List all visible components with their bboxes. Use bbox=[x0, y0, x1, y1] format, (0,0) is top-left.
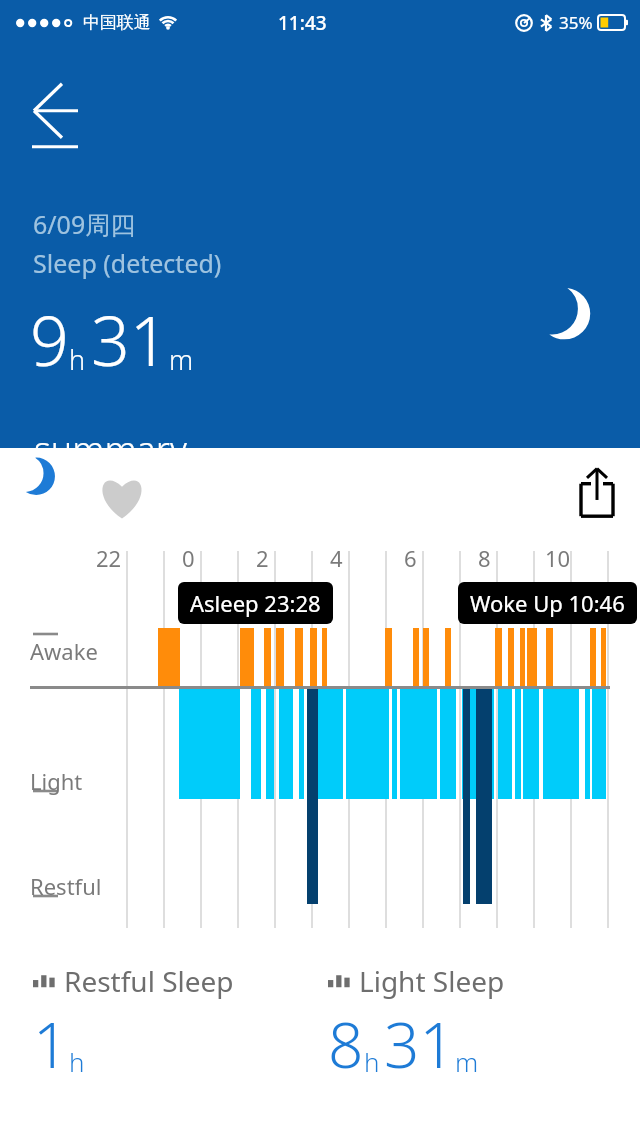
button[interactable]: Heart rate bbox=[95, 470, 149, 524]
staticText: h bbox=[69, 341, 86, 378]
staticText: 31 bbox=[91, 293, 169, 386]
staticText: 31 bbox=[384, 1002, 455, 1086]
staticText: 8 bbox=[478, 543, 491, 573]
button[interactable]: summary bbox=[30, 423, 191, 476]
button[interactable]: Share bbox=[572, 464, 622, 522]
button[interactable]: Back bbox=[22, 85, 88, 141]
staticText: 中国联通 bbox=[83, 12, 151, 33]
staticText: Restful bbox=[30, 871, 102, 901]
staticText: 6 bbox=[404, 543, 417, 573]
staticText: 6/09周四 bbox=[33, 207, 136, 241]
staticText: Woke Up 10:46 bbox=[470, 588, 625, 618]
staticText: 0 bbox=[182, 543, 195, 573]
staticText: Awake bbox=[30, 636, 98, 666]
staticText: h bbox=[364, 1044, 380, 1079]
staticText: 2 bbox=[256, 543, 269, 573]
button[interactable]: Asleep 23:28 bbox=[190, 588, 321, 618]
staticText: 8 bbox=[328, 1002, 364, 1086]
staticText: 35% bbox=[559, 11, 593, 34]
staticText: 11:43 bbox=[278, 10, 327, 36]
staticText: Light Sleep bbox=[359, 962, 505, 1000]
staticText: Sleep (detected) bbox=[33, 246, 222, 280]
staticText: m bbox=[455, 1044, 479, 1079]
staticText: h bbox=[69, 1044, 85, 1079]
staticText: 1 bbox=[33, 1002, 69, 1086]
staticText: 22 bbox=[96, 543, 122, 573]
staticText: 10 bbox=[545, 543, 571, 573]
staticText: 4 bbox=[330, 543, 343, 573]
staticText: m bbox=[169, 341, 194, 378]
staticText: Restful Sleep bbox=[64, 962, 234, 1000]
staticText: 9 bbox=[30, 293, 69, 386]
staticText: Asleep 23:28 bbox=[190, 588, 321, 618]
button[interactable]: Sleep bbox=[30, 468, 82, 520]
staticText: Light bbox=[30, 766, 83, 796]
button[interactable]: Woke Up 10:46 bbox=[470, 588, 625, 618]
staticText: summary bbox=[34, 425, 187, 474]
